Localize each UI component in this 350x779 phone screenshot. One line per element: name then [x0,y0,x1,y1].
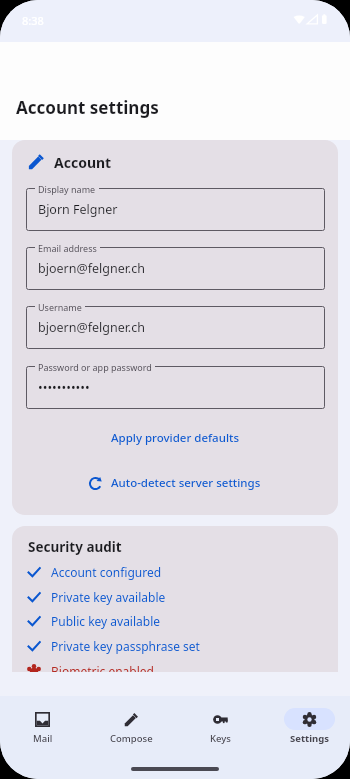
staticText: Username [38,301,82,313]
staticText: Private key available [51,589,166,605]
other: Keys [213,712,228,727]
other: Settings [302,712,317,727]
other: Compose [124,712,139,727]
staticText: bjoern@felgner.ch [38,260,145,277]
button[interactable]: Auto-detect server settings [12,470,338,496]
button[interactable]: Mail [0,696,87,779]
staticText: Auto-detect server settings [111,475,261,491]
staticText: Account settings [16,96,159,119]
staticText: ••••••••••• [38,379,90,396]
button[interactable]: Settings [265,696,350,779]
staticText: Password or app password [38,361,152,373]
button[interactable]: Keys [176,696,265,779]
button[interactable]: Private key passphrase set [26,636,338,656]
staticText: Private key passphrase set [51,638,200,654]
button[interactable]: Public key available [26,611,338,631]
button[interactable]: Compose [87,696,176,779]
staticText: bjoern@felgner.ch [38,319,145,336]
staticText: Security audit [28,538,122,556]
button[interactable]: Private key available [26,587,338,607]
staticText: Account [54,153,112,172]
staticText: Account configured [51,564,162,580]
other: Mail [35,712,50,727]
staticText: Biometric enabled [51,663,154,672]
button[interactable]: Biometric enabled [26,661,338,672]
staticText: Public key available [51,613,161,629]
staticText: Mail [33,732,53,745]
staticText: Compose [110,732,153,745]
button[interactable]: Apply provider defaults [12,425,338,451]
staticText: Keys [210,732,231,745]
staticText: Display name [38,183,96,195]
staticText: Settings [290,732,329,745]
staticText: 8:38 [22,13,44,28]
staticText: Bjorn Felgner [38,201,118,218]
staticText: Apply provider defaults [111,430,239,446]
button[interactable]: Account configured [26,562,338,582]
staticText: Email address [38,242,97,254]
